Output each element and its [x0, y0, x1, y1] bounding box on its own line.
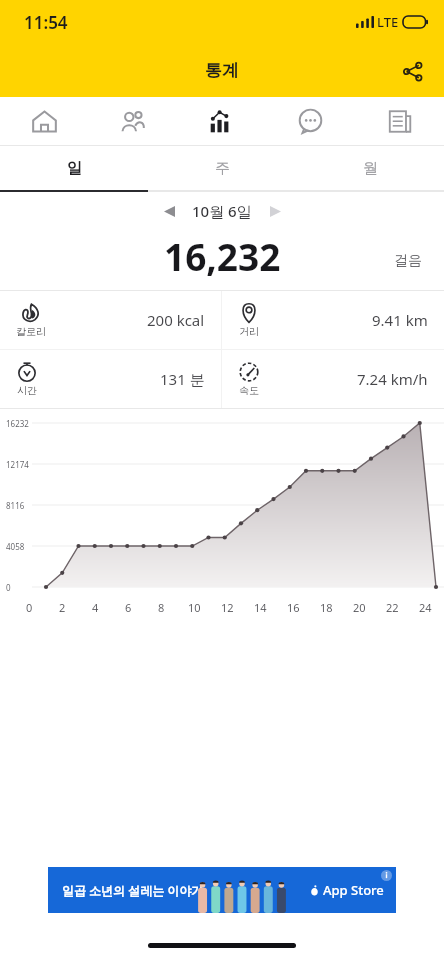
- staticText: 16232: [6, 418, 29, 429]
- staticText: 2: [59, 600, 66, 615]
- button[interactable]: 월: [296, 146, 444, 190]
- staticText: 18: [320, 600, 333, 615]
- staticText: 시간: [17, 384, 37, 397]
- staticText: 7.24 km/h: [357, 369, 428, 389]
- staticText: 칼로리: [16, 325, 46, 338]
- button[interactable]: 주: [148, 146, 296, 190]
- button[interactable]: 거리: [222, 291, 444, 349]
- staticText: 12: [221, 600, 234, 615]
- button[interactable]: 일곱 소년의 설레는 이야기: [48, 867, 396, 913]
- button[interactable]: Chat: [266, 97, 355, 145]
- staticText: 걸음: [394, 252, 422, 270]
- staticText: 14: [254, 600, 267, 615]
- staticText: 200 kcal: [147, 310, 205, 330]
- button[interactable]: Statistics: [177, 97, 266, 145]
- button[interactable]: 속도: [222, 350, 444, 408]
- staticText: 12174: [6, 459, 29, 470]
- staticText: 속도: [239, 384, 259, 397]
- staticText: 10: [188, 600, 201, 615]
- button[interactable]: Next day: [260, 196, 290, 226]
- staticText: 11:54: [24, 11, 68, 34]
- button[interactable]: 시간: [0, 350, 221, 408]
- staticText: 24: [419, 600, 432, 615]
- staticText: 통계: [205, 60, 239, 81]
- staticText: 8116: [6, 500, 25, 511]
- staticText: 0: [26, 600, 33, 615]
- staticText: 0: [6, 582, 11, 593]
- button[interactable]: Home: [0, 97, 88, 145]
- staticText: LTE: [377, 13, 399, 31]
- staticText: 6: [125, 600, 132, 615]
- staticText: 16,232: [164, 231, 281, 281]
- staticText: 16: [287, 600, 300, 615]
- staticText: 4058: [6, 541, 25, 552]
- staticText: 주: [215, 159, 230, 178]
- staticText: 9.41 km: [372, 310, 428, 330]
- staticText: 8: [158, 600, 165, 615]
- button[interactable]: 칼로리: [0, 291, 221, 349]
- button[interactable]: Previous day: [154, 196, 184, 226]
- staticText: App Store: [323, 881, 384, 899]
- button[interactable]: Share: [390, 49, 434, 93]
- staticText: 10월 6일: [192, 201, 252, 221]
- staticText: 일곱 소년의 설레는 이야기: [62, 882, 204, 898]
- staticText: 거리: [239, 325, 259, 338]
- button[interactable]: Friends: [88, 97, 177, 145]
- staticText: 월: [363, 159, 378, 178]
- staticText: 131 분: [160, 369, 205, 389]
- staticText: 20: [353, 600, 366, 615]
- staticText: 22: [386, 600, 399, 615]
- staticText: 4: [92, 600, 99, 615]
- button[interactable]: Ad info: [381, 870, 392, 881]
- button[interactable]: News: [355, 97, 444, 145]
- staticText: 일: [67, 159, 82, 178]
- button[interactable]: 일: [0, 146, 148, 190]
